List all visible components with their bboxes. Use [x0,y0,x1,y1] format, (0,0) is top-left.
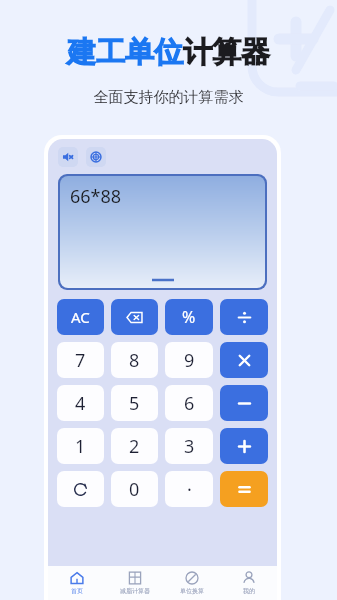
staticText: 7 [75,348,86,373]
staticText: 9 [184,348,195,373]
staticText: 2 [129,434,140,459]
button[interactable]: key [220,471,268,507]
staticText: 首页 [71,587,83,595]
staticText: 66*88 [70,184,122,209]
button[interactable]: 9 [165,342,213,378]
button[interactable]: key [220,385,268,421]
staticText: 3 [184,434,195,459]
button[interactable]: % [165,299,213,335]
button[interactable]: 我的 [220,566,277,600]
staticText: 5 [129,391,140,416]
button[interactable]: 1 [57,428,104,464]
button[interactable]: 2 [111,428,158,464]
button[interactable]: 6 [165,385,213,421]
staticText: 1 [75,434,86,459]
button[interactable]: 0 [111,471,158,507]
button[interactable]: 首页 [48,566,106,600]
button[interactable]: 4 [57,385,104,421]
button[interactable]: key [220,299,268,335]
staticText: 0 [129,477,140,502]
button[interactable]: Language [86,147,106,167]
staticText: 减脂计算器 [120,587,150,595]
button[interactable]: AC [57,299,104,335]
button[interactable]: 8 [111,342,158,378]
staticText: 计算器 [183,34,270,71]
staticText: AC [71,307,90,327]
button[interactable]: key [111,299,158,335]
staticText: 单位换算 [180,587,204,595]
button[interactable]: key [57,471,104,507]
staticText: % [182,306,196,328]
button[interactable]: key [220,342,268,378]
button[interactable]: 7 [57,342,104,378]
staticText: 4 [75,391,86,416]
staticText: · [187,477,192,502]
button[interactable]: key [220,428,268,464]
staticText: 全面支持你的计算需求 [0,88,337,107]
button[interactable]: Mute [58,147,78,167]
staticText: 我的 [243,587,255,595]
button[interactable]: 5 [111,385,158,421]
button[interactable]: 3 [165,428,213,464]
button[interactable]: · [165,471,213,507]
button[interactable]: 减脂计算器 [106,566,163,600]
button[interactable]: 单位换算 [163,566,220,600]
staticText: 8 [129,348,140,373]
staticText: 6 [184,391,195,416]
staticText: 建工单位 [67,34,183,71]
